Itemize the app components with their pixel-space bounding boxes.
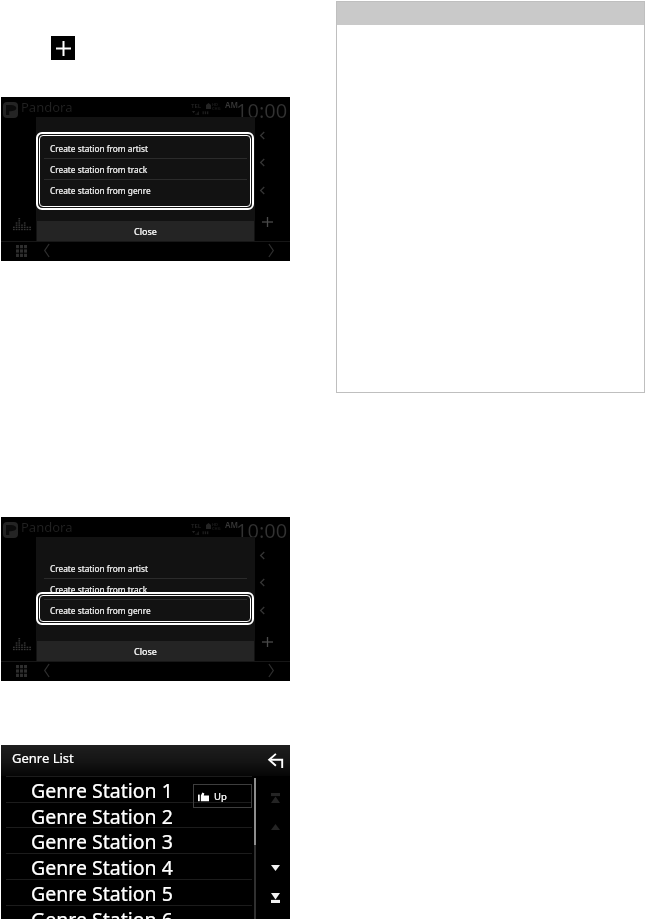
staticText: Close [134, 225, 157, 237]
staticText: Genre Station 2 [31, 803, 173, 829]
staticText: Pandora [21, 518, 73, 536]
staticText: HD [212, 522, 218, 527]
button[interactable]: Add [257, 633, 277, 651]
staticText: Up [214, 790, 227, 803]
staticText: Create station from artist [50, 143, 148, 154]
button[interactable]: Genre Station 3 [1, 827, 252, 853]
button[interactable]: Genre List [1, 745, 290, 776]
staticText: Genre Station 3 [31, 828, 173, 854]
staticText: Create station from genre [50, 185, 151, 196]
button[interactable]: Scroll down [271, 865, 280, 871]
button[interactable]: Add station [51, 36, 75, 60]
button[interactable]: Close [37, 641, 254, 661]
button[interactable]: Scroll up [271, 793, 280, 803]
button[interactable]: Close [37, 221, 254, 241]
button[interactable]: Create station from genre [37, 600, 254, 621]
staticText: TEL [191, 522, 202, 530]
staticText: Genre Station 5 [31, 880, 173, 906]
staticText: CHG [212, 106, 221, 111]
staticText: Pandora [21, 98, 73, 116]
staticText: Genre Station 6 [31, 906, 173, 919]
button[interactable]: Scroll up [271, 824, 280, 830]
staticText: Create station from genre [50, 605, 151, 616]
button[interactable]: Create station from track [37, 579, 254, 600]
button[interactable]: Create station from artist [37, 138, 254, 159]
staticText: 10:00 [236, 97, 288, 124]
staticText: Genre Station 1 [31, 777, 173, 803]
button[interactable]: Genre Station 2 [1, 802, 252, 828]
button[interactable]: Genre Station 1 [1, 776, 252, 802]
staticText: Create station from track [50, 164, 148, 175]
button[interactable]: Genre Station 4 [1, 853, 252, 879]
staticText: ▮▮▮ [202, 530, 209, 535]
button[interactable]: Genre Station 5 [1, 879, 252, 905]
staticText: Close [134, 645, 157, 657]
button[interactable]: Create station from track [37, 159, 254, 180]
button[interactable]: Create station from artist [37, 558, 254, 579]
staticText: TEL [191, 102, 202, 110]
staticText: ▮▮▮ [202, 110, 209, 115]
staticText: AM [225, 519, 239, 530]
button[interactable]: Genre Station 6 [1, 905, 252, 919]
staticText: Create station from track [50, 584, 148, 595]
staticText: Genre Station 4 [31, 854, 173, 880]
button[interactable]: Create station from genre [37, 180, 254, 201]
staticText: HD [212, 102, 218, 107]
button[interactable]: Scroll down [271, 893, 280, 903]
button[interactable]: Back [265, 747, 287, 773]
button[interactable]: Up [193, 784, 252, 808]
staticText: AM [225, 99, 239, 110]
staticText: Genre List [12, 749, 74, 767]
staticText: Create station from artist [50, 563, 148, 574]
staticText: 10:00 [236, 517, 288, 544]
staticText: CHG [212, 526, 221, 531]
button[interactable]: Add [257, 213, 277, 231]
